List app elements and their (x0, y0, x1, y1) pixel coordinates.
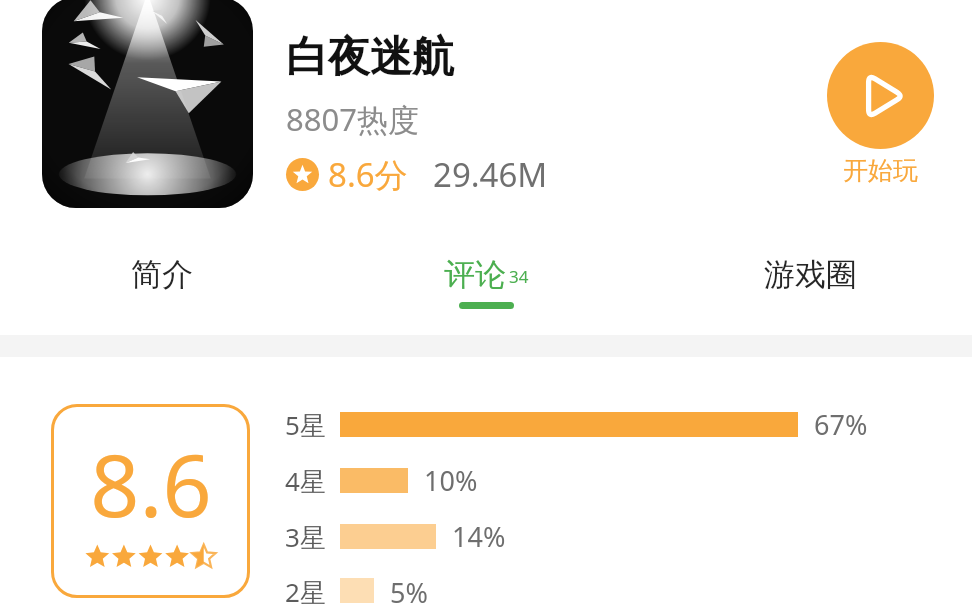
staticText: 34 (509, 265, 529, 288)
staticText: 8.6 (90, 425, 212, 542)
button[interactable]: 游戏圈 (648, 245, 972, 319)
staticText: 4星 (285, 463, 326, 499)
staticText: 8807热度 (286, 98, 419, 140)
staticText: 简介 (131, 255, 193, 294)
staticText: 3星 (285, 519, 326, 555)
staticText: 评论 (444, 255, 506, 294)
staticText: 开始玩 (843, 155, 918, 186)
button[interactable]: 简介 (0, 245, 324, 319)
button[interactable]: 开始玩 (821, 38, 940, 190)
button[interactable]: 白夜迷航 app icon (42, 0, 253, 208)
staticText: 游戏圈 (764, 255, 857, 294)
staticText: 14% (452, 518, 506, 555)
staticText: 67% (814, 406, 868, 443)
staticText: 10% (424, 462, 478, 499)
staticText: 8.6分 (328, 152, 408, 197)
staticText: 29.46M (433, 152, 548, 197)
button[interactable]: 评论 (324, 245, 648, 319)
staticText: 2星 (285, 574, 326, 607)
staticText: 白夜迷航 (286, 31, 454, 84)
staticText: 5星 (285, 407, 326, 443)
staticText: 5% (390, 574, 428, 607)
